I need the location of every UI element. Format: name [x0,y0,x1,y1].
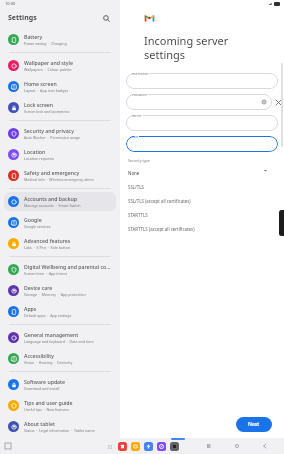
staticText: Accessibility [24,352,55,359]
staticText: Labs · S Pen · Side button [24,245,71,250]
staticText: SSL/TLS (accept all certificates) [128,198,191,204]
staticText: Wallpaper and style [24,59,73,66]
button[interactable]: SSL/TLS (accept all certificates) [120,194,264,208]
button[interactable]: About tablet [4,417,116,436]
staticText: Useful tips · New features [24,407,69,412]
staticText: Software update [24,378,66,385]
staticText: Lock screen [24,101,54,108]
staticText: Manage accounts · Smart Switch [24,203,81,208]
staticText: Safety and emergency [24,169,80,176]
button[interactable]: Tips and user guide [4,396,116,415]
button[interactable]: All apps [106,443,114,451]
staticText: Incoming server settings [144,33,229,62]
button[interactable]: Next [236,417,272,432]
staticText: Server [132,115,142,118]
button[interactable]: None [120,166,264,180]
staticText: Download and install [24,386,60,391]
button[interactable]: Software update [4,375,116,394]
staticText: Google [24,216,42,223]
staticText: Tips and user guide [24,399,73,406]
staticText: Vision · Hearing · Dexterity [24,360,73,365]
button[interactable]: Google [4,213,116,232]
button[interactable]: App 4 [157,442,166,451]
staticText: Battery [24,33,43,40]
staticText: Layout · App icon badges [24,88,69,93]
staticText: Password [132,94,147,97]
button[interactable]: Battery [4,30,116,49]
button[interactable]: STARTTLS (accept all certificates) [120,222,264,236]
staticText: Home screen [24,80,57,87]
button[interactable]: Expand security type [262,167,268,173]
button[interactable]: Clear password [272,96,284,108]
staticText: Location [24,148,46,155]
staticText: 10:00 [5,1,16,6]
button[interactable]: Home screen [4,77,116,96]
button[interactable]: Back [260,441,270,451]
staticText: Power saving · Charging [24,41,67,46]
staticText: Google services [24,224,51,229]
staticText: Security type [128,158,150,163]
button[interactable]: App 1 [118,442,127,451]
staticText: About tablet [24,420,55,427]
staticText: Username [132,73,148,76]
button[interactable]: Location [4,145,116,164]
button[interactable]: Advanced features [4,234,116,253]
staticText: Security and privacy [24,127,74,134]
staticText: Next [248,421,260,428]
button[interactable]: Security and privacy [4,124,116,143]
button[interactable]: Home [232,441,242,451]
staticText: Advanced features [24,237,71,244]
button[interactable]: Apps [4,302,116,321]
button[interactable]: Device care [4,281,116,300]
button[interactable]: Edge panel [279,210,284,236]
button[interactable]: Safety and emergency [4,166,116,185]
staticText: Medical info · Wireless emergency alerts [24,177,94,182]
staticText: Accounts and backup [24,195,77,202]
staticText: SSL/TLS [128,184,144,190]
staticText: General management [24,331,79,338]
staticText: Screen time · App timers [24,271,68,276]
button[interactable]: Wallpaper and style [4,56,116,75]
button[interactable]: Screenshot [5,443,11,449]
button[interactable]: Digital Wellbeing and parental controls [4,260,116,279]
staticText: Default apps · App settings [24,313,72,318]
button[interactable]: Lock screen [4,98,116,117]
staticText: Storage · Memory · App protection [24,292,86,297]
staticText: STARTTLS [128,212,148,218]
staticText: Screen lock and biometrics [24,109,70,114]
staticText: Device care [24,284,53,291]
staticText: STARTTLS (accept all certificates) [128,226,195,232]
staticText: Apps [24,305,37,312]
staticText: Auto Blocker · Permission usage [24,135,81,140]
staticText: Port [132,136,139,139]
staticText: Status · Legal information · Tablet name [24,428,95,433]
button[interactable]: Search [100,12,112,24]
staticText: Location requests [24,156,54,161]
button[interactable]: Server [126,115,278,131]
button[interactable]: App 2 [131,442,140,451]
button[interactable]: SSL/TLS [120,180,264,194]
staticText: Wallpapers · Colour palette [24,67,72,72]
staticText: Settings [8,13,37,23]
staticText: Language and keyboard · Date and time [24,339,94,344]
staticText: None [128,170,140,176]
button[interactable]: Show password [260,98,268,106]
button[interactable]: Port [126,136,278,152]
button[interactable]: General management [4,328,116,347]
button[interactable]: Recents [204,441,214,451]
button[interactable]: Accounts and backup [4,192,116,211]
button[interactable]: App 3 [144,442,153,451]
button[interactable]: STARTTLS [120,208,264,222]
button[interactable]: Password [126,94,272,110]
button[interactable]: Username [126,73,278,89]
button[interactable]: Accessibility [4,349,116,368]
button[interactable]: App 5 [170,442,179,451]
staticText: Digital Wellbeing and parental controls [24,263,112,270]
